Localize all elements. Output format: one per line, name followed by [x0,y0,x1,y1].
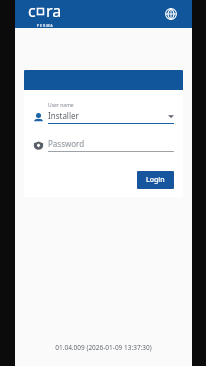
staticText: 01.04.009 (2026-01-09 13:37:30) [15,343,192,352]
button[interactable]: Change language [162,5,180,23]
button[interactable]: User name [33,102,174,124]
button[interactable]: Login [137,171,174,189]
staticText: ra [46,0,62,22]
staticText: User name [48,102,74,109]
button[interactable]: Password [33,138,174,152]
staticText: c [28,0,36,22]
staticText: Installer [48,110,168,121]
staticText: Password [48,138,85,149]
staticText: PERMA [37,23,54,28]
staticText: Login [146,175,165,185]
button[interactable]: cora logo [28,0,62,28]
